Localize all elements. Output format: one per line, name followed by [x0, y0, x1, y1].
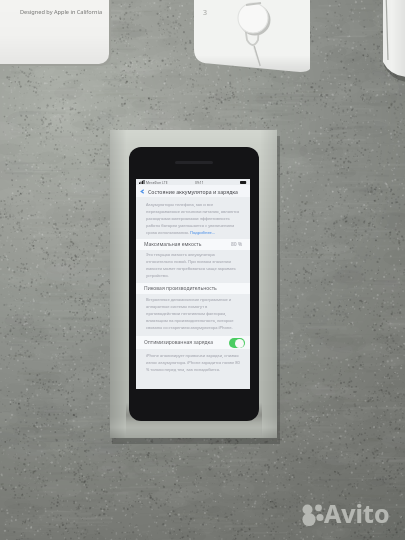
button[interactable]: Пиковая производительность: [136, 283, 250, 294]
staticText: Пиковая производительность: [144, 285, 217, 292]
staticText: 3: [203, 8, 208, 18]
staticText: 09:11: [195, 180, 204, 185]
button[interactable]: Максимальная емкость: [136, 239, 250, 250]
staticText: Состояние аккумулятора и зарядка: [148, 188, 239, 195]
button[interactable]: Back: [139, 188, 146, 195]
staticText: Это текущая емкость аккумулятора относит…: [146, 252, 241, 279]
staticText: Designed by Apple in California: [20, 8, 103, 16]
staticText: МегаФон LTE: [146, 180, 168, 185]
staticText: Встроенные динамические программные и ап…: [146, 297, 241, 331]
staticText: Максимальная емкость: [144, 241, 202, 248]
button[interactable]: Back: [136, 185, 250, 197]
staticText: iPhone анализирует привычки зарядки, сни…: [146, 353, 241, 373]
staticText: 80 %: [231, 241, 243, 248]
button[interactable]: Оптимизированная зарядка: [136, 336, 250, 349]
staticText: Оптимизированная зарядка: [144, 339, 213, 346]
staticText: Аккумуляторы телефона, как и все перезар…: [146, 202, 241, 236]
staticText: Avito: [324, 496, 390, 530]
